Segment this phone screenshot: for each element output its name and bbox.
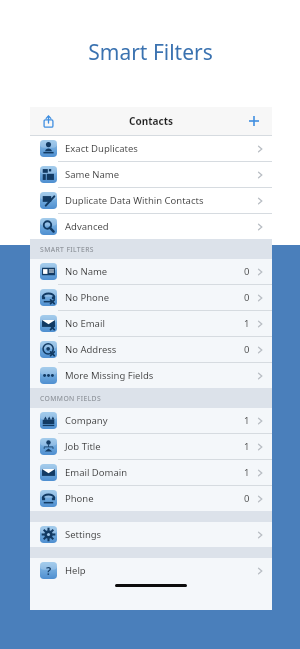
button[interactable]: Email Domain — [30, 460, 272, 486]
staticText: 1 — [244, 414, 250, 427]
staticText: Settings — [65, 528, 102, 541]
staticText: No Name — [65, 265, 108, 278]
button[interactable]: Phone — [30, 486, 272, 511]
staticText: Help — [65, 564, 86, 577]
staticText: No Email — [65, 317, 105, 330]
staticText: ? — [46, 563, 52, 578]
button[interactable]: No Address — [30, 337, 272, 363]
staticText: Phone — [65, 492, 94, 505]
staticText: Contacts — [129, 114, 174, 128]
button[interactable]: Company — [30, 408, 272, 434]
staticText: Email Domain — [65, 466, 128, 479]
button[interactable]: Settings — [30, 522, 272, 547]
staticText: SMART FILTERS — [40, 245, 94, 254]
staticText: 1 — [244, 317, 250, 330]
button[interactable]: Job Title — [30, 434, 272, 460]
staticText: 0 — [244, 492, 250, 505]
staticText: 0 — [244, 265, 250, 278]
button[interactable]: ? — [30, 558, 272, 583]
staticText: Exact Duplicates — [65, 142, 138, 155]
button[interactable]: More Missing Fields — [30, 363, 272, 388]
staticText: No Phone — [65, 291, 110, 304]
staticText: Job Title — [65, 440, 101, 453]
staticText: Duplicate Data Within Contacts — [65, 194, 204, 207]
staticText: COMMON FIELDS — [40, 394, 102, 403]
button[interactable]: Share — [38, 111, 58, 131]
staticText: Company — [65, 414, 108, 427]
staticText: 0 — [244, 343, 250, 356]
button[interactable]: No Name — [30, 259, 272, 285]
staticText: Advanced — [65, 220, 109, 233]
staticText: Same Name — [65, 168, 120, 181]
button[interactable]: Advanced — [30, 214, 272, 239]
staticText: 1 — [244, 466, 250, 479]
staticText: Smart Filters — [88, 38, 213, 67]
button[interactable]: No Phone — [30, 285, 272, 311]
staticText: No Address — [65, 343, 117, 356]
button[interactable]: Add — [244, 111, 264, 131]
staticText: More Missing Fields — [65, 369, 154, 382]
button[interactable]: No Email — [30, 311, 272, 337]
staticText: 1 — [244, 440, 250, 453]
button[interactable]: Same Name — [30, 162, 272, 188]
staticText: 0 — [244, 291, 250, 304]
button[interactable]: Duplicate Data Within Contacts — [30, 188, 272, 214]
button[interactable]: Exact Duplicates — [30, 136, 272, 162]
